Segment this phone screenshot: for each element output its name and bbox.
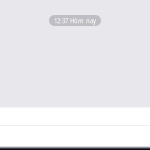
- staticText: 12:37 Hôm nay: [54, 15, 96, 25]
